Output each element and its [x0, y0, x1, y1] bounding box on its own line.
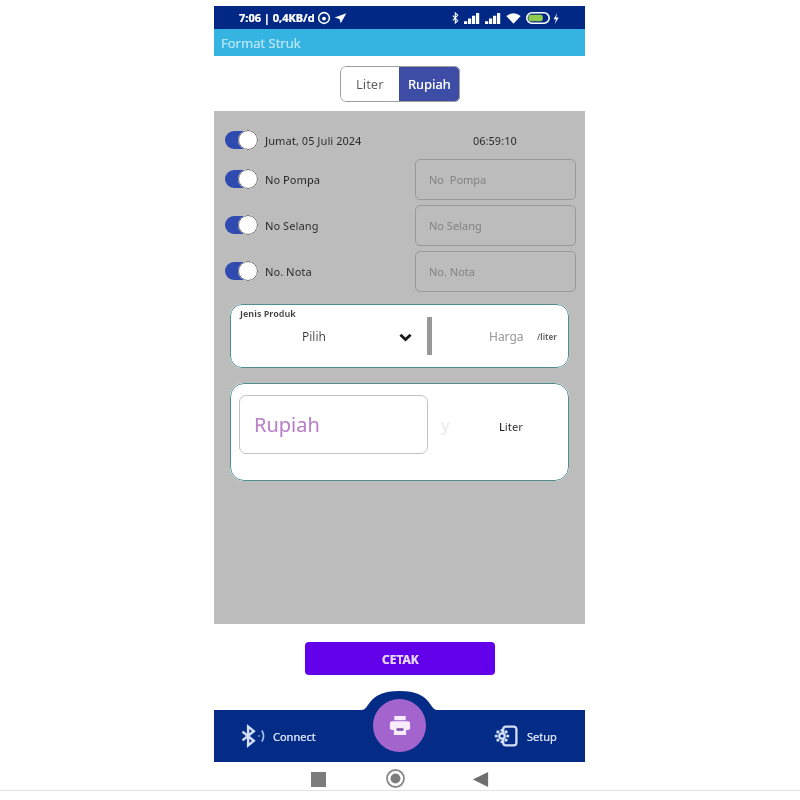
button[interactable]: Print: [373, 699, 426, 752]
button[interactable]: Home: [386, 769, 405, 788]
button[interactable]: No. Nota: [415, 251, 576, 292]
staticText: Liter: [356, 75, 384, 93]
button[interactable]: Connect: [240, 725, 364, 747]
staticText: CETAK: [382, 651, 419, 667]
staticText: Setup: [527, 729, 557, 744]
button[interactable]: No Selang: [415, 205, 576, 246]
button[interactable]: Setup: [434, 724, 585, 748]
button[interactable]: Enable date: [224, 130, 258, 150]
button[interactable]: Enable No. Nota: [224, 261, 258, 281]
staticText: No. Nota: [265, 264, 312, 279]
staticText: Jumat, 05 Juli 2024: [265, 133, 362, 148]
staticText: y: [441, 413, 450, 436]
staticText: No Selang: [265, 218, 319, 233]
staticText: Pilih: [302, 328, 326, 344]
button[interactable]: Rupiah: [399, 66, 460, 102]
button[interactable]: No Pompa: [415, 159, 576, 200]
staticText: No Pompa: [265, 172, 321, 187]
button[interactable]: Enable No Selang: [224, 215, 258, 235]
staticText: Connect: [273, 729, 316, 744]
staticText: No Pompa: [429, 172, 487, 187]
staticText: 7:06 | 0,4KB/d: [239, 10, 315, 25]
button[interactable]: Jenis Produk: [230, 304, 569, 368]
button[interactable]: Enable No Pompa: [224, 169, 258, 189]
button[interactable]: CETAK: [305, 642, 495, 675]
staticText: /liter: [537, 331, 557, 342]
staticText: No Selang: [429, 218, 482, 233]
staticText: Format Struk: [221, 34, 301, 52]
staticText: Rupiah: [408, 75, 451, 93]
button[interactable]: Recents: [310, 771, 326, 787]
button[interactable]: Rupiah: [239, 395, 428, 454]
button[interactable]: Liter: [340, 66, 399, 102]
staticText: 06:59:10: [473, 133, 517, 148]
button[interactable]: Back: [471, 770, 489, 788]
staticText: Liter: [499, 419, 524, 434]
staticText: Jenis Produk: [240, 307, 296, 319]
staticText: Rupiah: [254, 411, 320, 438]
staticText: Harga: [489, 328, 524, 344]
staticText: No. Nota: [429, 264, 475, 279]
